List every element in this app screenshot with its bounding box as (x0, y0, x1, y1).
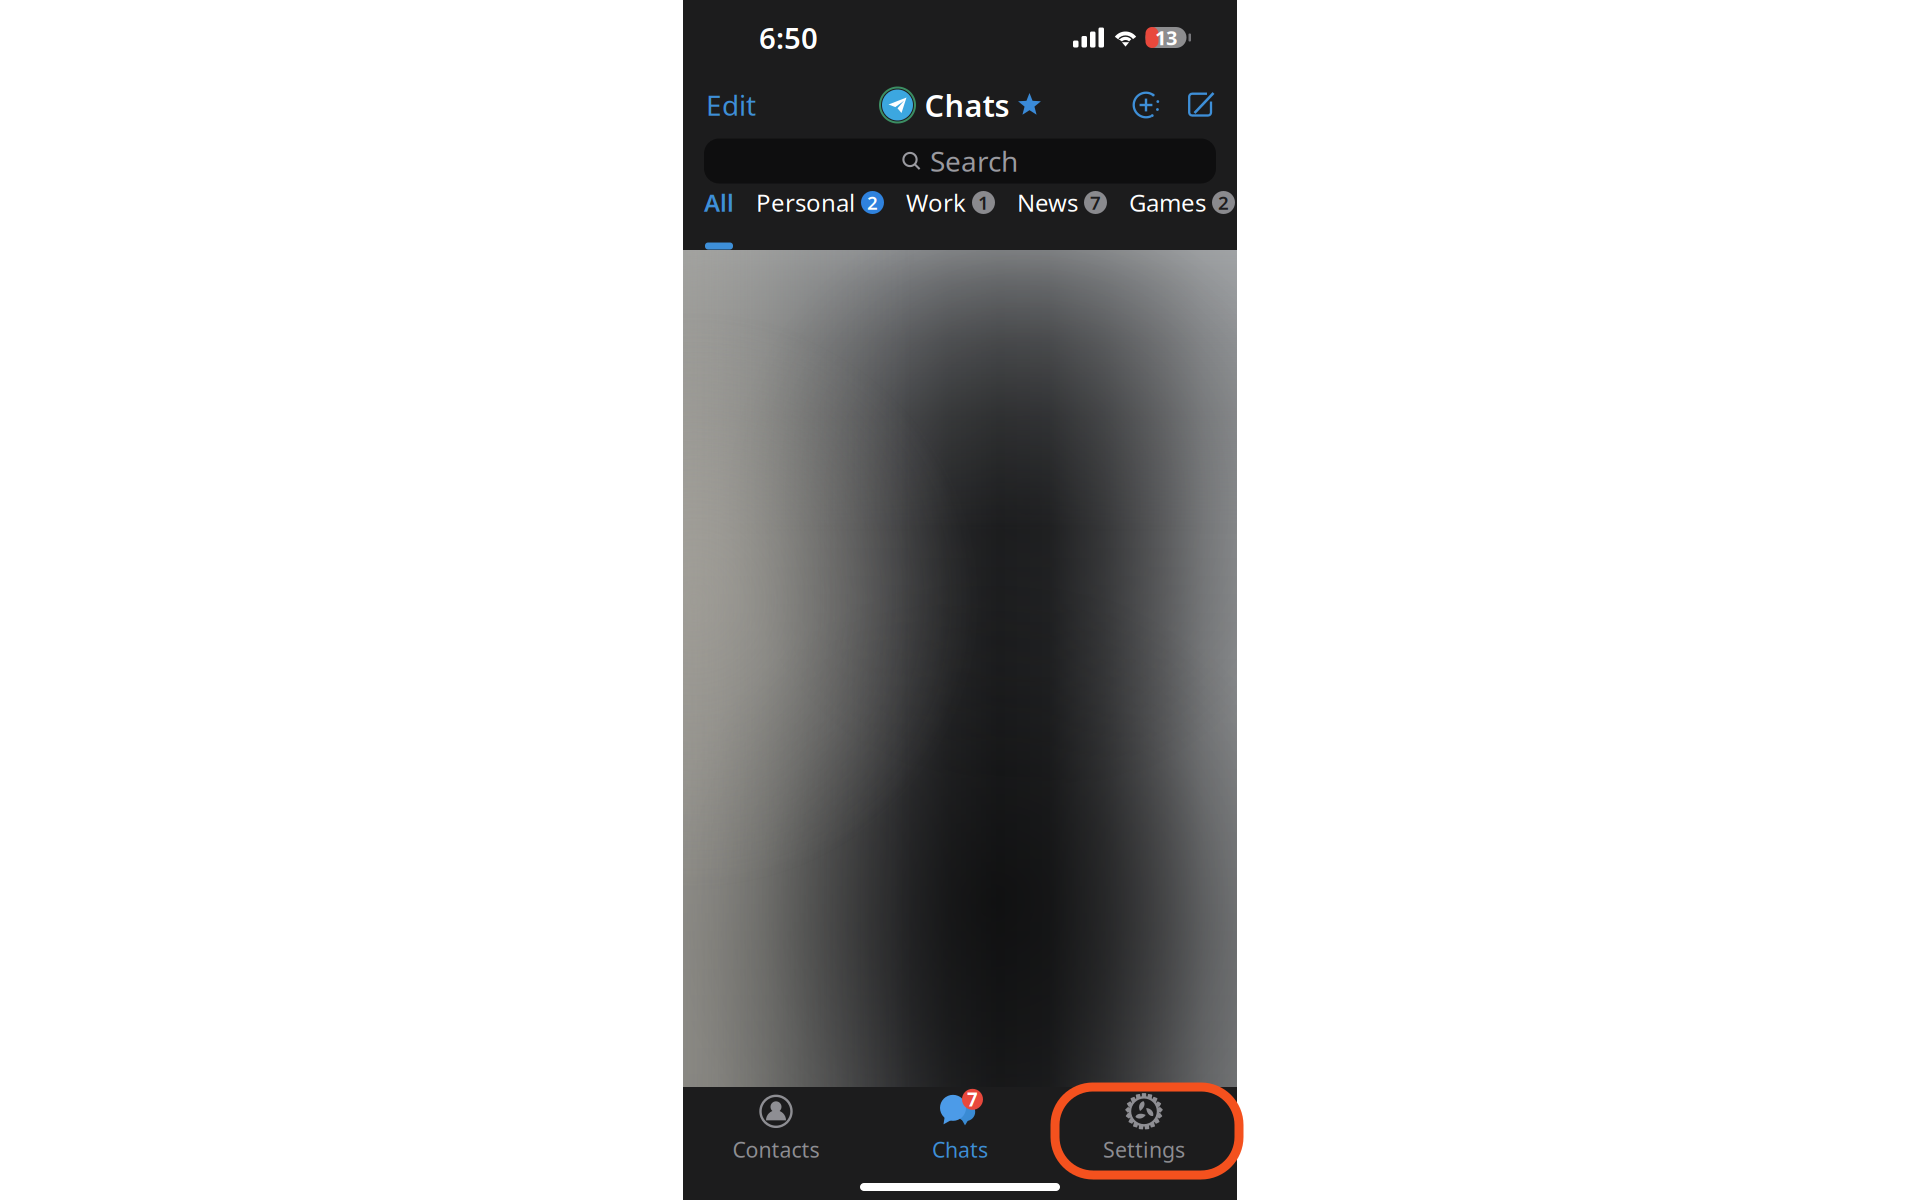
button[interactable]: Settings (1052, 1088, 1236, 1168)
button[interactable]: Search (704, 138, 1216, 183)
button[interactable]: Games (1129, 187, 1235, 249)
staticText: Contacts (732, 1135, 819, 1164)
button[interactable]: New chat (1126, 85, 1166, 125)
staticText: Edit (706, 86, 756, 124)
staticText: Chats (932, 1135, 988, 1164)
staticText: All (704, 187, 734, 218)
staticText: Work (906, 187, 966, 218)
staticText: Settings (1103, 1135, 1185, 1164)
staticText: 13 (1155, 24, 1177, 51)
button[interactable]: Contacts (684, 1088, 868, 1168)
staticText: 1 (978, 190, 989, 215)
staticText: News (1017, 187, 1078, 218)
staticText: Personal (756, 187, 855, 218)
staticText: 6:50 (759, 18, 818, 57)
staticText: Chats (924, 85, 1009, 125)
staticText: 7 (967, 1087, 978, 1112)
button[interactable]: All (704, 187, 734, 249)
button[interactable]: Edit (698, 78, 764, 132)
staticText: 2 (1218, 190, 1229, 215)
staticText: 2 (867, 190, 878, 215)
button[interactable]: News (1017, 187, 1107, 249)
staticText: Search (930, 142, 1018, 180)
button[interactable]: Compose (1180, 85, 1221, 125)
button[interactable]: Work (906, 187, 995, 249)
button[interactable]: 7 (868, 1088, 1052, 1168)
staticText: 7 (1090, 190, 1101, 215)
staticText: Games (1129, 187, 1206, 218)
button[interactable]: Personal (756, 187, 884, 249)
